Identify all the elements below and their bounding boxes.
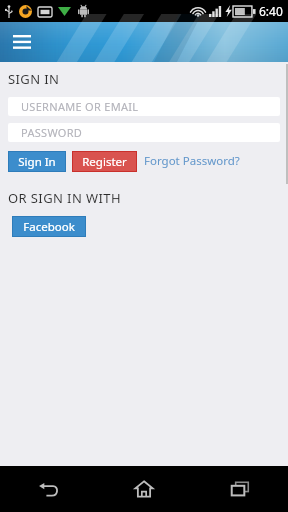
button[interactable]: Recent apps — [192, 466, 288, 512]
button[interactable]: Home — [96, 466, 192, 512]
staticText: Register — [82, 154, 127, 170]
staticText: 6:40 — [259, 3, 283, 19]
button[interactable]: Forgot Password? — [144, 150, 240, 172]
staticText: USERNAME OR EMAIL — [21, 99, 139, 114]
staticText: Sign In — [18, 154, 56, 170]
button[interactable]: Register — [73, 152, 136, 171]
button[interactable]: USERNAME OR EMAIL — [8, 97, 280, 116]
staticText: SIGN IN — [8, 70, 60, 88]
button[interactable]: Sign In — [9, 152, 65, 171]
button[interactable]: Back — [0, 466, 96, 512]
staticText: Forgot Password? — [144, 153, 240, 169]
staticText: OR SIGN IN WITH — [8, 189, 121, 207]
button[interactable]: PASSWORD — [8, 123, 280, 142]
button[interactable]: Facebook — [13, 217, 85, 236]
staticText: Facebook — [23, 219, 75, 235]
staticText: PASSWORD — [21, 125, 83, 140]
button[interactable]: Open navigation menu — [6, 26, 38, 58]
